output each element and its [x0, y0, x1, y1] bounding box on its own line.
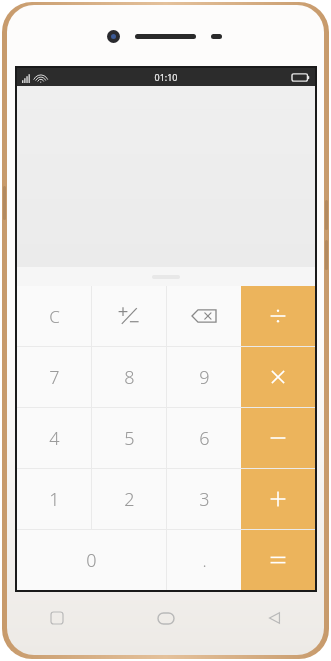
button[interactable]: Recent apps [40, 601, 74, 635]
button[interactable]: 9 [167, 347, 241, 407]
button[interactable]: 4 [17, 408, 91, 468]
staticText: 4 [49, 426, 60, 451]
button[interactable]: 7 [17, 347, 91, 407]
button[interactable]: C [17, 286, 91, 346]
button[interactable]: Back [257, 601, 291, 635]
button[interactable]: 5 [92, 408, 166, 468]
staticText: 01:10 [154, 71, 178, 83]
button[interactable]: Home [149, 601, 183, 635]
button[interactable]: Divide [241, 286, 315, 346]
button[interactable]: 6 [167, 408, 241, 468]
button[interactable]: 3 [167, 469, 241, 529]
button[interactable]: Plus minus [92, 286, 166, 346]
button[interactable]: 8 [92, 347, 166, 407]
button[interactable]: Plus [241, 469, 315, 529]
button[interactable]: Multiply [241, 347, 315, 407]
button[interactable]: Backspace [167, 286, 241, 346]
staticText: C [49, 305, 60, 328]
staticText: 2 [124, 487, 135, 512]
staticText: 0 [86, 548, 97, 573]
staticText: 5 [124, 426, 135, 451]
button[interactable]: 1 [17, 469, 91, 529]
staticText: 7 [49, 365, 60, 390]
button[interactable]: Minus [241, 408, 315, 468]
button[interactable]: 0 [17, 530, 166, 590]
button[interactable]: Equals [241, 530, 315, 590]
staticText: 3 [199, 487, 210, 512]
staticText: 1 [49, 487, 60, 512]
staticText: 8 [124, 365, 135, 390]
staticText: 6 [199, 426, 210, 451]
staticText: . [202, 549, 207, 572]
button[interactable]: 2 [92, 469, 166, 529]
staticText: 9 [199, 365, 210, 390]
